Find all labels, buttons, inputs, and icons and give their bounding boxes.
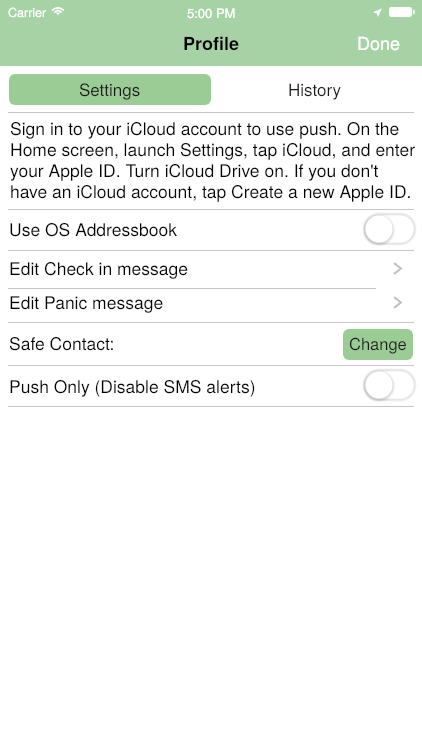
button[interactable]: Edit Check in message xyxy=(0,251,422,288)
staticText: Done xyxy=(357,29,401,55)
staticText: Change xyxy=(349,331,407,355)
button[interactable]: History xyxy=(211,74,413,105)
staticText: Use OS Addressbook xyxy=(9,216,177,241)
staticText: Edit Check in message xyxy=(9,255,189,280)
staticText: Carrier xyxy=(8,3,47,21)
button[interactable]: Edit Panic message xyxy=(0,289,422,322)
button[interactable]: Change xyxy=(343,329,413,360)
staticText: History xyxy=(288,76,342,100)
staticText: Settings xyxy=(79,76,141,100)
staticText: Edit Panic message xyxy=(9,289,164,314)
staticText: Safe Contact: xyxy=(9,330,115,355)
staticText: Sign in to your iCloud account to use pu… xyxy=(10,115,418,202)
staticText: Push Only (Disable SMS alerts) xyxy=(9,373,256,398)
staticText: 5:00 PM xyxy=(187,3,236,22)
other: Toggle switch, off xyxy=(364,214,415,244)
other: Toggle switch, off xyxy=(364,370,415,400)
staticText: Profile xyxy=(183,30,240,56)
button[interactable]: Settings xyxy=(9,74,211,105)
button[interactable]: Push Only (Disable SMS alerts) xyxy=(0,366,422,406)
button[interactable]: Done xyxy=(336,21,422,63)
button[interactable]: Use OS Addressbook xyxy=(0,210,422,250)
